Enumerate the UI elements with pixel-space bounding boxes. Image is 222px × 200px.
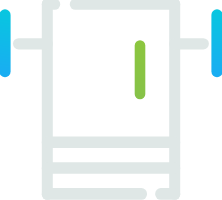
button[interactable]: Towel rail illustration <box>0 0 222 200</box>
